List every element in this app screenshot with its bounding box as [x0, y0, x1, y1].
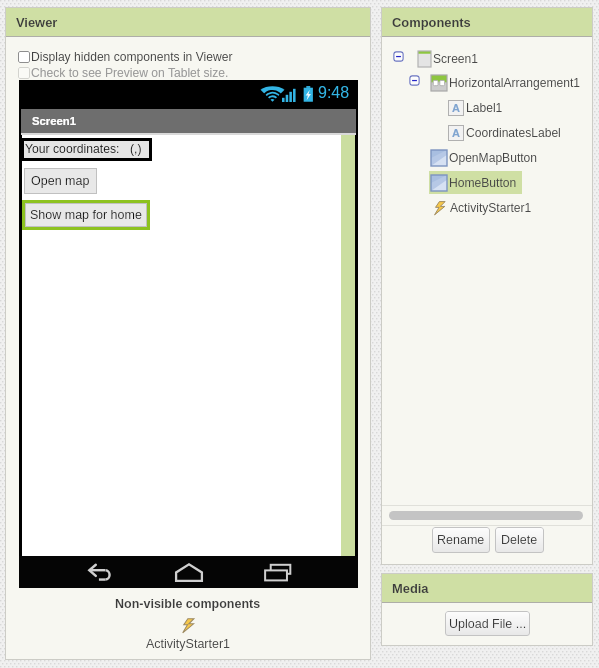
button[interactable]: Back — [79, 558, 123, 587]
button[interactable]: Show map for home — [22, 200, 150, 230]
button[interactable]: OpenMapButton — [431, 146, 538, 169]
button[interactable]: Delete — [495, 527, 544, 553]
staticText: Display hidden components in Viewer — [31, 50, 233, 64]
staticText: Check to see Preview on Tablet size. — [31, 66, 229, 80]
staticText: Screen1 — [433, 52, 479, 66]
staticText: Upload File ... — [449, 617, 527, 631]
staticText: CoordinatesLabel — [466, 126, 561, 140]
staticText: HorizontalArrangement1 — [449, 76, 581, 90]
button[interactable]: Horizontal scroll bar — [389, 511, 583, 520]
staticText: ActivityStarter1 — [146, 637, 231, 651]
staticText: 9:48 — [318, 84, 350, 102]
staticText: Show map for home — [30, 208, 142, 222]
staticText: Rename — [437, 533, 485, 547]
button[interactable]: Display hidden components in Viewer — [18, 48, 233, 65]
staticText: Non-visible components — [115, 597, 261, 611]
staticText: OpenMapButton — [449, 151, 538, 165]
button[interactable]: Screen1 — [418, 47, 479, 70]
staticText: Viewer — [16, 15, 58, 29]
button[interactable]: Home — [166, 558, 210, 587]
staticText: Open map — [31, 174, 90, 188]
button[interactable]: Collapse Screen1 — [393, 51, 404, 62]
button[interactable]: HorizontalArrangement1 — [431, 71, 581, 94]
button[interactable]: Rename — [432, 527, 490, 553]
staticText: Screen1 — [32, 115, 76, 128]
staticText: Components — [392, 15, 471, 29]
staticText: A — [452, 102, 460, 114]
button[interactable]: Your coordinates: — [21, 138, 152, 161]
button[interactable]: A — [448, 96, 503, 119]
button[interactable]: A — [448, 121, 561, 144]
staticText: Label1 — [466, 101, 503, 115]
staticText: ActivityStarter1 — [450, 201, 532, 215]
button[interactable]: Open map — [24, 168, 97, 194]
staticText: Your coordinates: — [25, 142, 120, 156]
button[interactable]: Check to see Preview on Tablet size. — [18, 64, 229, 81]
staticText: A — [452, 127, 460, 139]
button[interactable]: Upload File ... — [445, 611, 530, 636]
staticText: Media — [392, 581, 429, 595]
staticText: Delete — [501, 533, 538, 547]
staticText: HomeButton — [449, 176, 517, 190]
button[interactable]: HomeButton — [431, 171, 517, 194]
button[interactable]: ActivityStarter1 — [432, 196, 532, 219]
button[interactable]: Recent apps — [256, 558, 300, 587]
button[interactable]: Collapse HorizontalArrangement1 — [409, 75, 420, 86]
staticText: (,) — [130, 142, 142, 156]
